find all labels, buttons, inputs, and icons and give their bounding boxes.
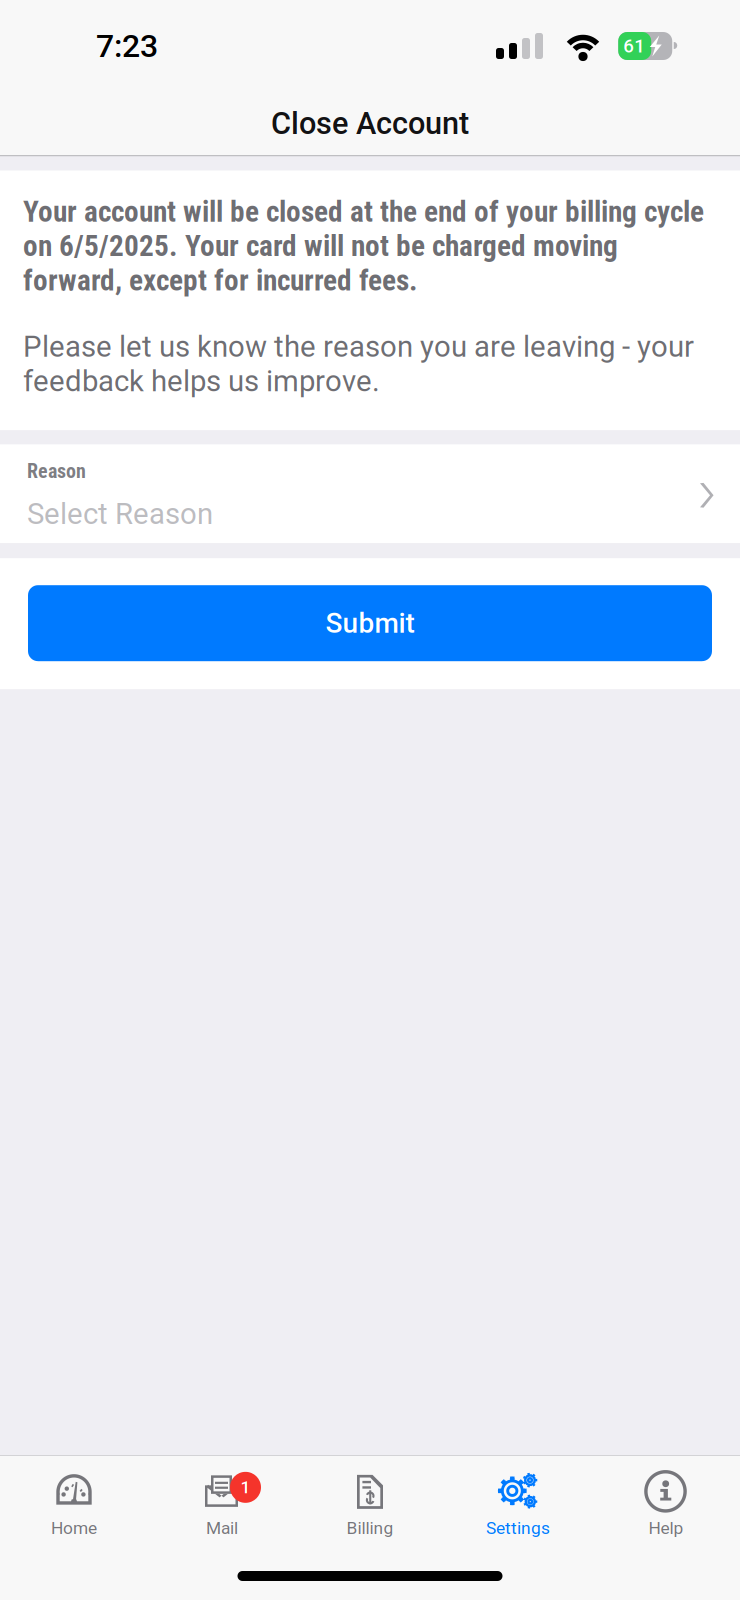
staticText: Your account will be closed at the end o… <box>23 194 704 298</box>
staticText: Submit <box>325 607 414 640</box>
staticText: 1 <box>240 1477 250 1497</box>
button[interactable]: Help <box>592 1458 740 1550</box>
staticText: Help <box>648 1518 683 1538</box>
staticText: Select Reason <box>27 497 213 531</box>
staticText: Settings <box>486 1518 550 1538</box>
button[interactable]: Submit <box>28 585 712 661</box>
staticText: Billing <box>346 1518 393 1538</box>
staticText: 7:23 <box>96 27 158 65</box>
staticText: Reason <box>27 459 86 483</box>
button[interactable]: Billing <box>296 1458 444 1550</box>
button[interactable]: Home <box>0 1458 148 1550</box>
staticText: Home <box>51 1518 97 1538</box>
staticText: Mail <box>206 1518 238 1538</box>
staticText: Close Account <box>271 105 469 141</box>
staticText: 61 <box>623 35 645 57</box>
button[interactable]: Settings <box>444 1458 592 1550</box>
button[interactable]: 1 <box>148 1458 296 1550</box>
staticText: Please let us know the reason you are le… <box>23 330 694 398</box>
button[interactable]: Reason <box>0 444 740 543</box>
